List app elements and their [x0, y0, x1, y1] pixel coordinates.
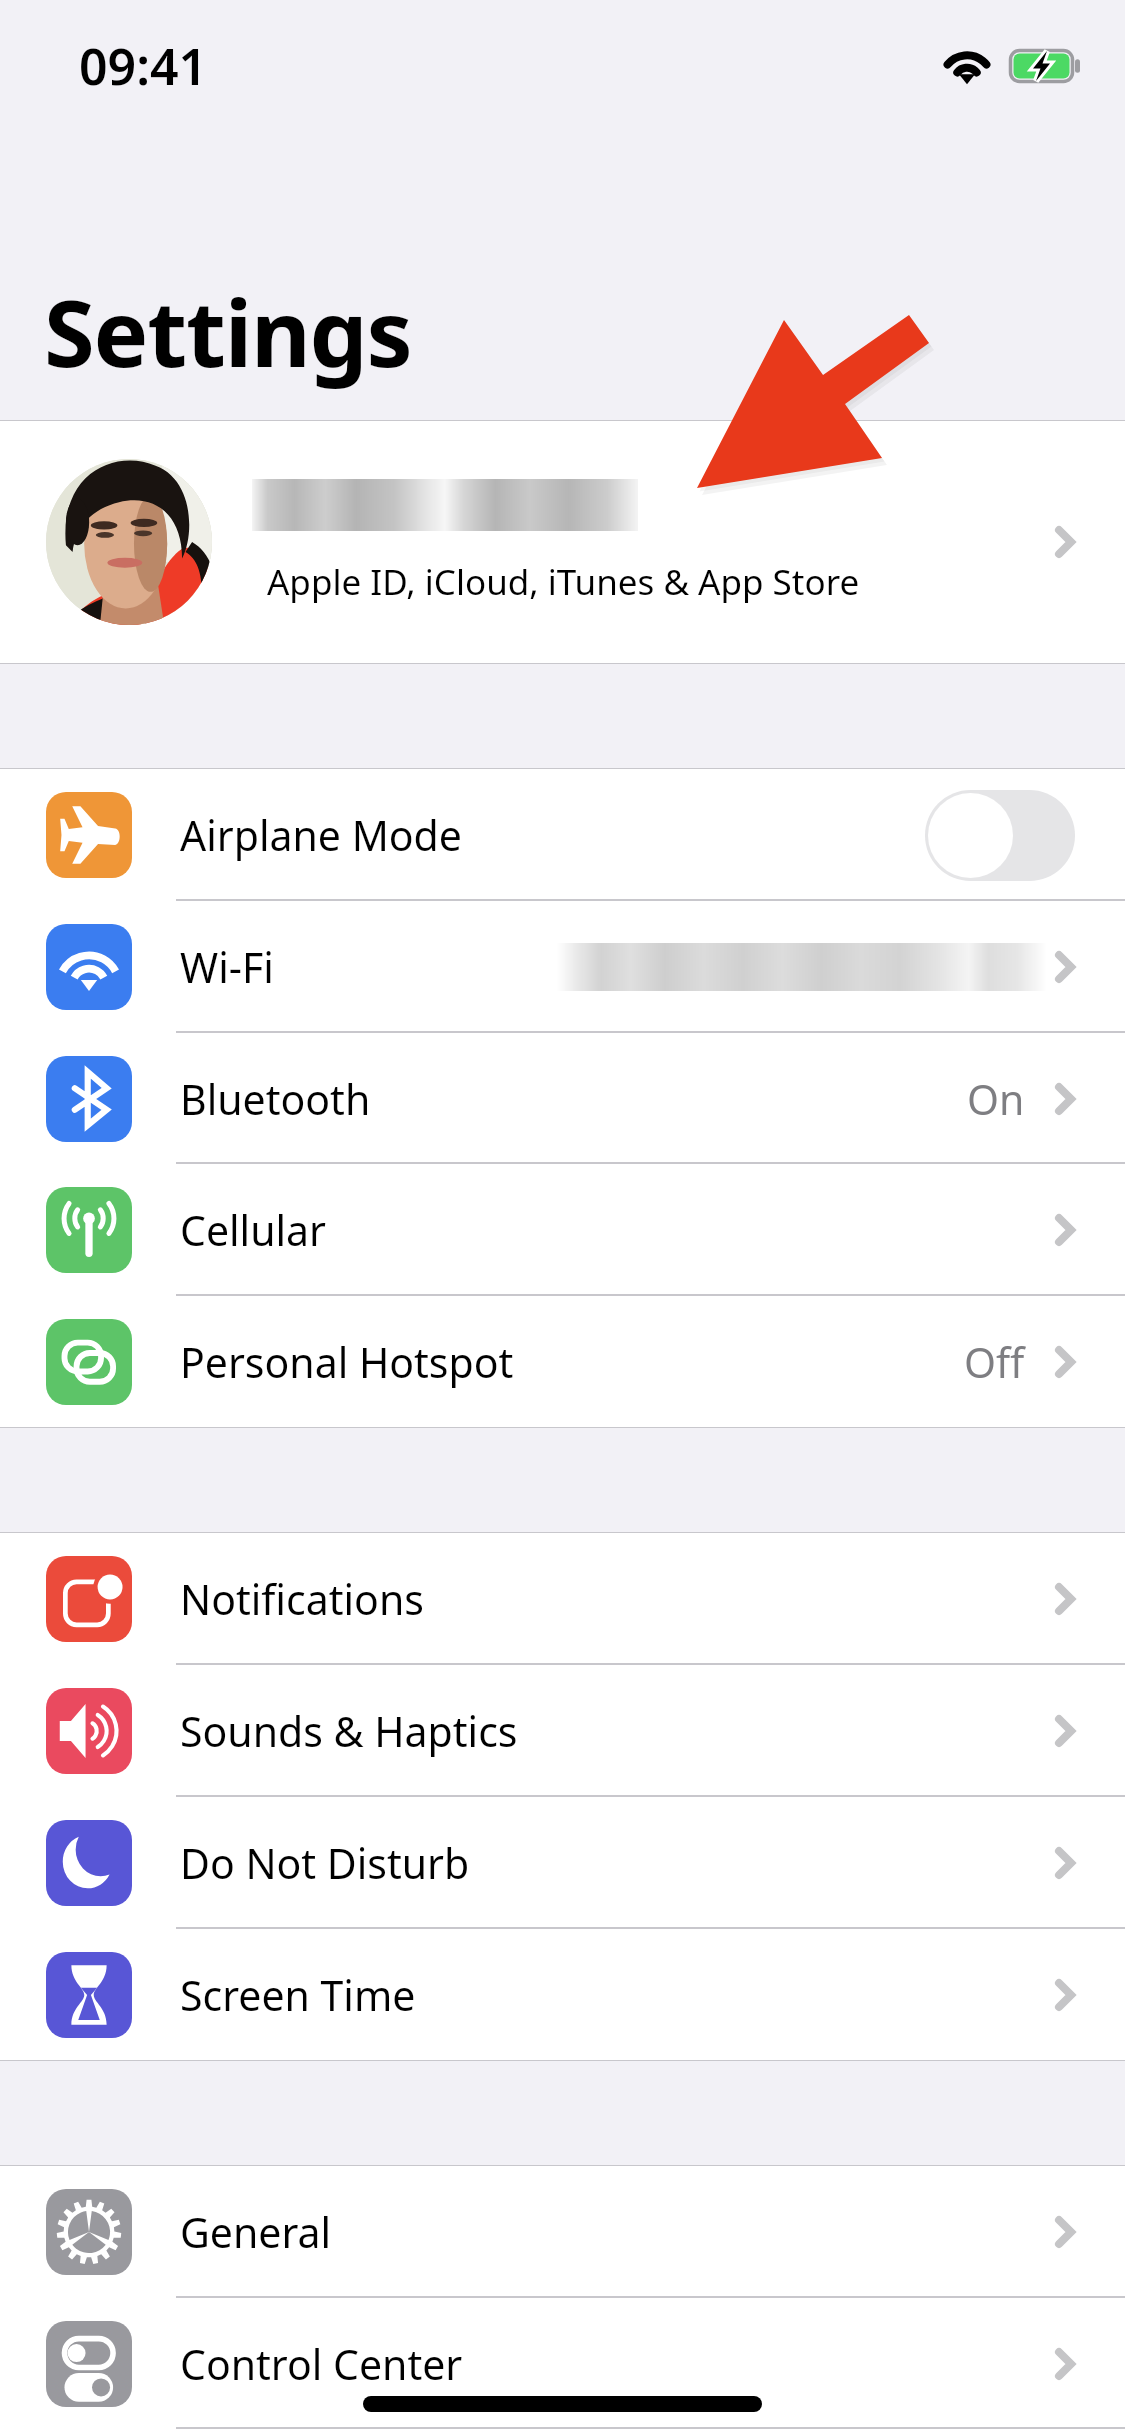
button[interactable]: Wi-Fi	[0, 901, 1125, 1033]
staticText: Cellular	[180, 1202, 327, 1258]
staticText: Wi-Fi	[180, 939, 274, 995]
button[interactable]: General	[0, 2166, 1125, 2298]
button[interactable]: Bluetooth	[0, 1033, 1125, 1164]
button[interactable]: Screen Time	[0, 1929, 1125, 2060]
staticText: Airplane Mode	[180, 807, 462, 863]
button[interactable]: Personal Hotspot	[0, 1296, 1125, 1427]
staticText: Apple ID, iCloud, iTunes & App Store	[267, 558, 860, 606]
staticText: Sounds & Haptics	[180, 1703, 518, 1759]
staticText: General	[180, 2204, 332, 2260]
other: Pointer annotation	[0, 0, 1125, 2436]
button[interactable]: Sounds & Haptics	[0, 1665, 1125, 1797]
staticText: Notifications	[180, 1571, 424, 1627]
staticText: Control Center	[180, 2336, 463, 2392]
staticText: Bluetooth	[180, 1071, 371, 1127]
staticText: On	[967, 1071, 1025, 1127]
button[interactable]: Airplane Mode toggle	[925, 790, 1075, 881]
button[interactable]: Airplane Mode	[0, 769, 1125, 901]
staticText: Do Not Disturb	[180, 1835, 470, 1891]
button[interactable]: Control Center	[0, 2298, 1125, 2429]
button[interactable]: Notifications	[0, 1533, 1125, 1665]
staticText: Off	[964, 1334, 1025, 1390]
staticText: Personal Hotspot	[180, 1334, 514, 1390]
button[interactable]: Cellular	[0, 1164, 1125, 1296]
staticText: Settings	[44, 269, 412, 394]
staticText: Screen Time	[180, 1967, 416, 2023]
staticText: 09:41	[79, 32, 208, 100]
button[interactable]: Do Not Disturb	[0, 1797, 1125, 1929]
button[interactable]: Apple ID, iCloud, iTunes & App Store	[0, 421, 1125, 663]
